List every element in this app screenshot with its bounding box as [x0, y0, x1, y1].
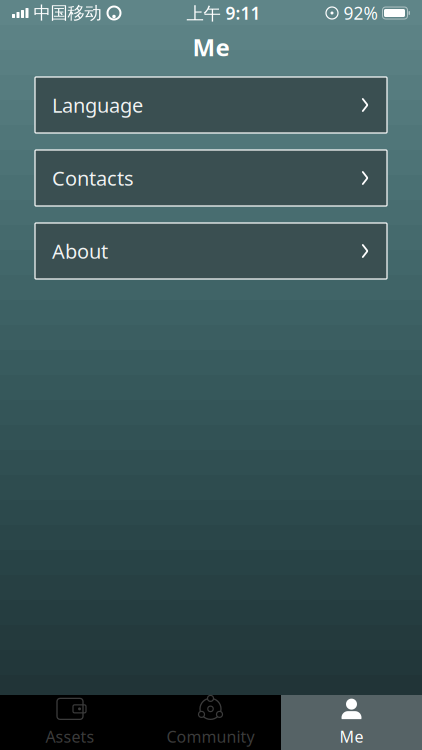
button[interactable]: Community: [140, 695, 281, 750]
staticText: 中国移动: [33, 2, 101, 24]
staticText: Community: [166, 726, 254, 747]
staticText: Assets: [45, 726, 94, 747]
button[interactable]: Language: [35, 77, 387, 133]
staticText: 92%: [343, 1, 377, 24]
staticText: Me: [192, 31, 229, 63]
staticText: Contacts: [52, 165, 134, 191]
staticText: Language: [52, 92, 143, 118]
button[interactable]: Contacts: [35, 150, 387, 206]
staticText: 上午 9:11: [186, 1, 260, 24]
staticText: Me: [339, 726, 363, 747]
button[interactable]: About: [35, 223, 387, 279]
staticText: About: [52, 238, 108, 264]
button[interactable]: Assets: [0, 695, 140, 750]
button[interactable]: Me: [281, 695, 422, 750]
